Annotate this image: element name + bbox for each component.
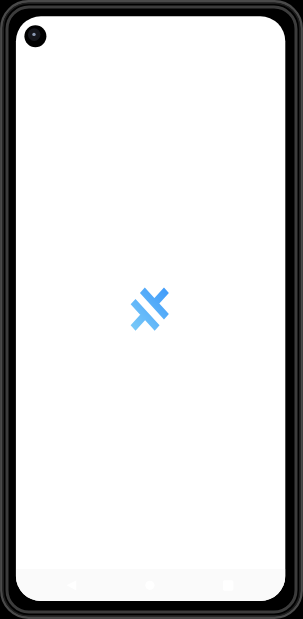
other: Splash screen <box>0 0 303 619</box>
